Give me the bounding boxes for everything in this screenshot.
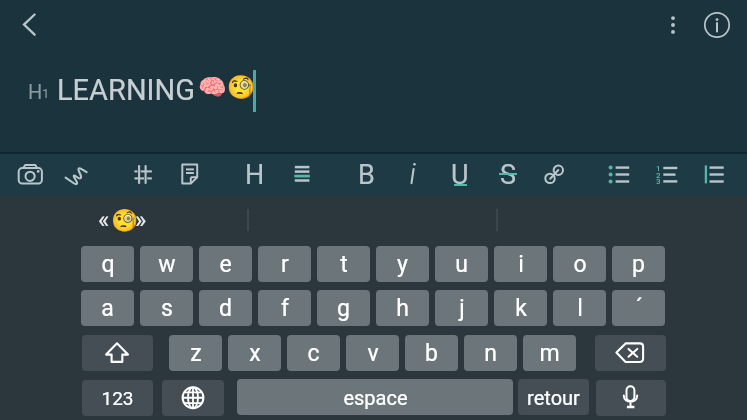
button[interactable]: Paragraph style — [281, 154, 323, 196]
staticText: x — [249, 340, 261, 367]
staticText: 1 — [656, 164, 661, 173]
staticText: B — [358, 159, 375, 191]
button[interactable]: Bulleted list — [598, 154, 640, 196]
button[interactable]: e — [199, 246, 252, 282]
staticText: t — [340, 251, 348, 278]
button[interactable]: v — [346, 335, 399, 371]
button[interactable]: Strikethrough — [487, 154, 529, 196]
button[interactable]: x — [228, 335, 281, 371]
staticText: h — [396, 295, 409, 322]
staticText: n — [484, 340, 497, 367]
staticText: » — [135, 206, 147, 234]
button[interactable]: f — [258, 290, 311, 326]
button[interactable]: s — [140, 290, 193, 326]
button[interactable]: espace — [237, 379, 513, 415]
staticText: k — [515, 295, 527, 322]
button[interactable]: y — [376, 246, 429, 282]
button[interactable]: c — [287, 335, 340, 371]
staticText: z — [190, 340, 202, 367]
button[interactable]: Italic — [392, 154, 434, 196]
button[interactable]: Numbered list — [646, 154, 688, 196]
button[interactable]: p — [612, 246, 665, 282]
button[interactable]: a — [81, 290, 134, 326]
button[interactable]: Format — [122, 154, 164, 196]
staticText: s — [161, 295, 173, 322]
button[interactable]: d — [199, 290, 252, 326]
button[interactable]: o — [553, 246, 606, 282]
staticText: p — [632, 251, 645, 278]
staticText: r — [281, 251, 289, 278]
button[interactable]: Back — [4, 5, 44, 45]
staticText: U — [451, 159, 469, 191]
button[interactable]: l — [553, 290, 606, 326]
button[interactable]: Indent — [693, 154, 735, 196]
button[interactable]: 123 — [82, 380, 153, 416]
button[interactable]: ´ — [612, 290, 665, 326]
staticText: j — [459, 295, 465, 322]
button[interactable]: retour — [518, 379, 589, 415]
staticText: H — [245, 159, 265, 191]
button[interactable]: n — [464, 335, 517, 371]
staticText: l — [577, 295, 583, 322]
button[interactable]: Suggestion — [0, 196, 248, 236]
staticText: H — [28, 80, 43, 103]
staticText: 123 — [101, 387, 134, 409]
button[interactable]: Link — [533, 154, 575, 196]
staticText: 🧐 — [111, 208, 139, 234]
button[interactable]: Bold — [345, 154, 387, 196]
button[interactable]: u — [435, 246, 488, 282]
staticText: w — [158, 251, 176, 278]
button[interactable]: i — [494, 246, 547, 282]
button[interactable]: g — [317, 290, 370, 326]
staticText: 2 — [656, 171, 661, 180]
staticText: b — [425, 340, 438, 367]
staticText: S — [500, 159, 517, 191]
button[interactable]: Camera — [9, 154, 51, 196]
staticText: g — [337, 295, 350, 322]
button[interactable]: m — [523, 335, 576, 371]
staticText: espace — [343, 386, 408, 409]
staticText: retour — [527, 386, 580, 409]
staticText: y — [397, 251, 408, 278]
staticText: 🧠🧐 — [198, 74, 256, 101]
button[interactable]: r — [258, 246, 311, 282]
button[interactable]: w — [140, 246, 193, 282]
button[interactable]: Heading — [234, 154, 276, 196]
staticText: u — [455, 251, 468, 278]
button[interactable]: Shift — [82, 335, 153, 371]
staticText: f — [281, 295, 289, 322]
button[interactable]: q — [81, 246, 134, 282]
button[interactable]: t — [317, 246, 370, 282]
staticText: m — [539, 340, 560, 367]
button[interactable]: Change language — [162, 380, 224, 416]
button[interactable]: z — [169, 335, 222, 371]
staticText: 3 — [656, 177, 661, 186]
button[interactable]: b — [405, 335, 458, 371]
staticText: q — [101, 251, 115, 278]
staticText: i — [518, 251, 524, 278]
staticText: d — [219, 295, 232, 322]
staticText: a — [101, 295, 114, 322]
staticText: v — [367, 340, 379, 367]
button[interactable]: Info — [697, 5, 737, 45]
staticText: o — [573, 251, 587, 278]
button[interactable]: Voice input — [596, 380, 666, 416]
button[interactable]: Backspace — [595, 335, 666, 371]
button[interactable]: More options — [653, 5, 693, 45]
staticText: e — [219, 251, 232, 278]
button[interactable]: j — [435, 290, 488, 326]
button[interactable]: h — [376, 290, 429, 326]
button[interactable]: k — [494, 290, 547, 326]
staticText: c — [307, 340, 320, 367]
staticText: 1 — [42, 86, 50, 101]
button[interactable]: Draw — [55, 154, 97, 196]
staticText: « — [98, 206, 110, 234]
staticText: LEARNING — [57, 73, 195, 107]
button[interactable]: Template — [169, 154, 211, 196]
button[interactable]: Underline — [439, 154, 481, 196]
staticText: ´ — [635, 295, 643, 322]
